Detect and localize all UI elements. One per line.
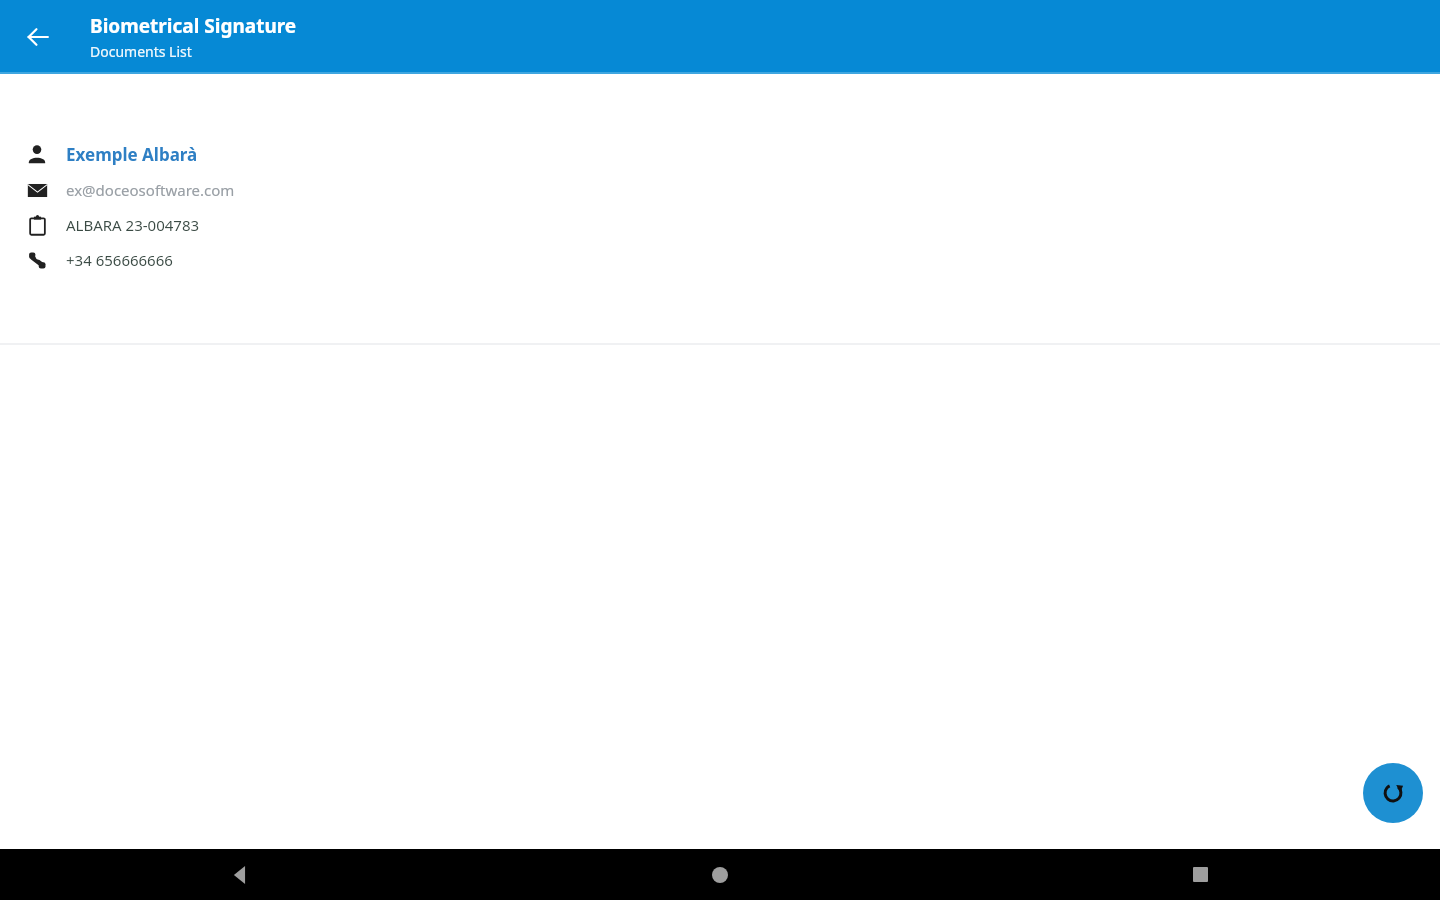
staticText: ALBARA 23-004783 <box>66 215 200 235</box>
staticText: ex@doceosoftware.com <box>66 180 235 200</box>
button[interactable]: Home <box>480 849 960 900</box>
button[interactable]: Back <box>14 13 62 61</box>
staticText: Biometrical Signature <box>90 13 297 39</box>
button[interactable]: Recents <box>960 849 1440 900</box>
button[interactable]: Refresh <box>1363 763 1423 823</box>
staticText: Exemple Albarà <box>66 143 198 166</box>
button[interactable]: Exemple Albarà <box>0 141 1440 273</box>
button[interactable]: Back <box>0 849 480 900</box>
staticText: Documents List <box>90 42 192 61</box>
staticText: +34 656666666 <box>66 250 173 270</box>
